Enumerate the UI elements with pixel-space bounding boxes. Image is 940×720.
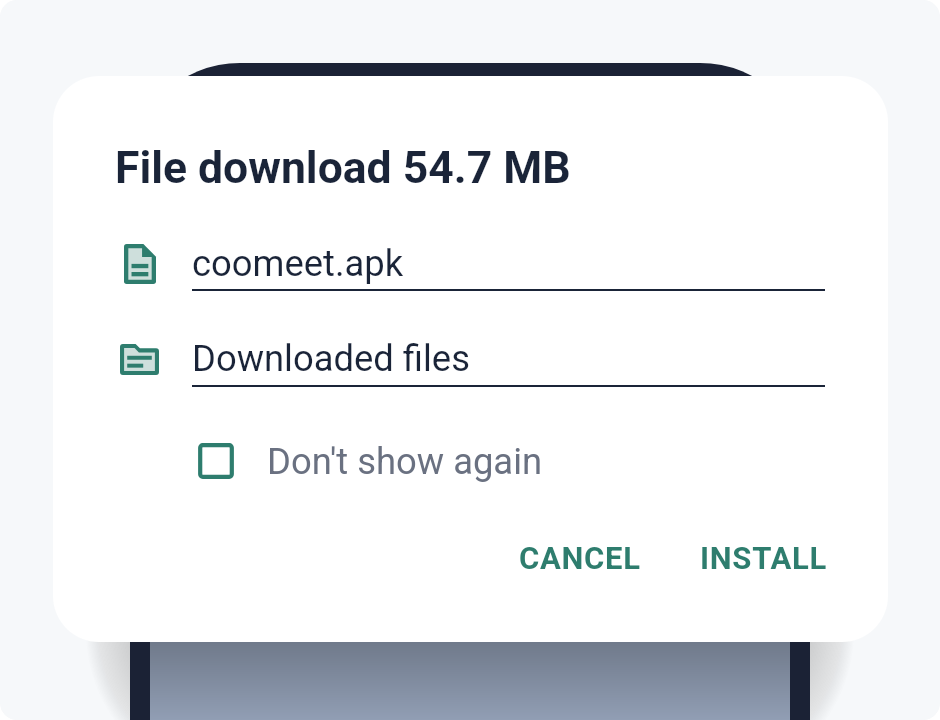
staticText: CANCEL [519, 540, 641, 576]
staticText: File download 54.7 MB [115, 142, 571, 194]
button[interactable]: INSTALL [674, 528, 852, 588]
staticText: coomeet.apk [192, 242, 404, 285]
staticText: INSTALL [700, 540, 827, 576]
button[interactable]: Downloaded files [115, 332, 825, 392]
staticText: Downloaded files [192, 337, 470, 380]
button[interactable]: CANCEL [491, 528, 669, 588]
button[interactable]: Don't show again checkbox [191, 434, 611, 488]
button[interactable]: coomeet.apk [115, 236, 825, 296]
staticText: Don't show again [267, 440, 543, 483]
other: Don't show again checkbox [198, 443, 234, 479]
